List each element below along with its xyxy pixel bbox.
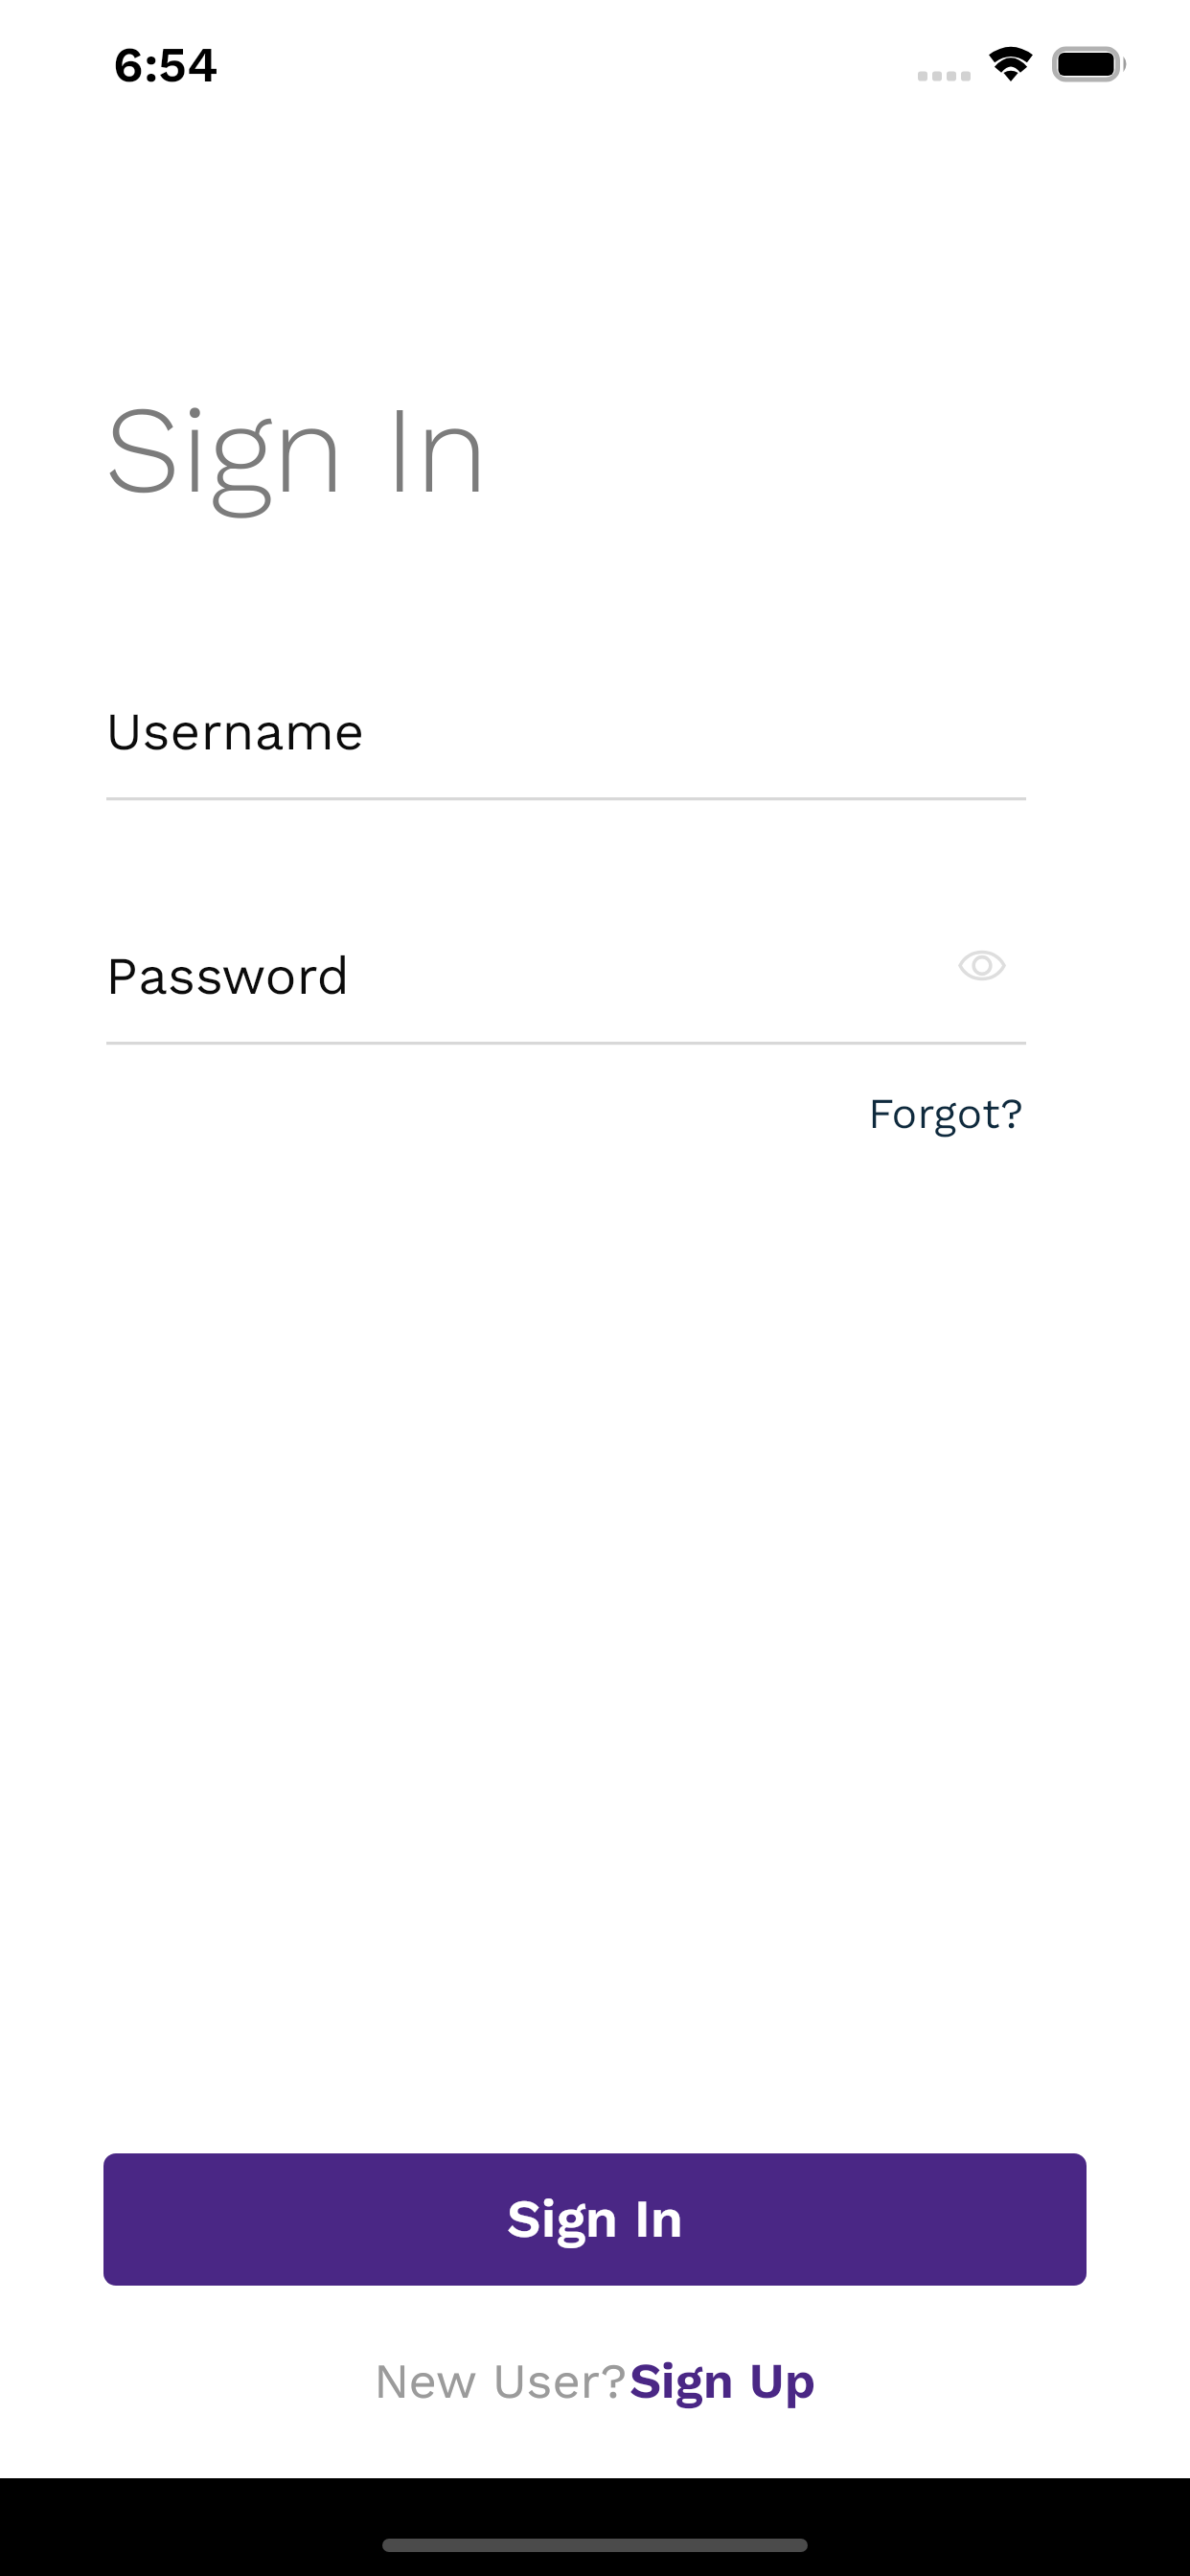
button[interactable]: Show password (944, 922, 1040, 1018)
button[interactable]: Sign Up (614, 2352, 817, 2417)
button[interactable]: Sign In (103, 2153, 1087, 2286)
button[interactable]: Password (106, 915, 902, 1049)
button[interactable]: Username (106, 671, 1026, 805)
button[interactable]: Forgot password (858, 1077, 1040, 1148)
